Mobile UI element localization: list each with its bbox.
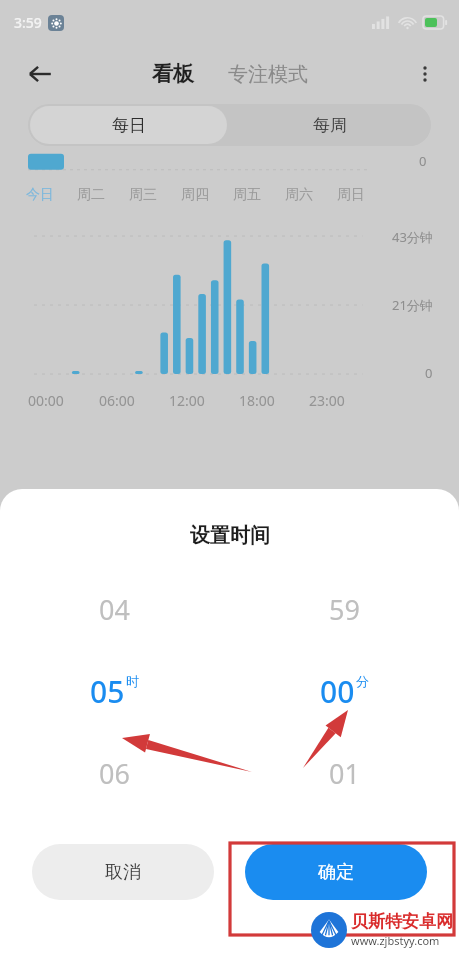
staticText: 周五 bbox=[233, 186, 261, 204]
staticText: 分 bbox=[356, 673, 369, 689]
staticText: 确定 bbox=[318, 861, 354, 884]
button[interactable]: 专注模式 bbox=[224, 62, 312, 87]
button[interactable]: 04 bbox=[0, 577, 229, 641]
staticText: 05 bbox=[90, 671, 125, 712]
button[interactable]: 06 bbox=[0, 741, 229, 805]
staticText: 43分钟 bbox=[392, 228, 433, 246]
staticText: 18:00 bbox=[239, 391, 275, 410]
button[interactable]: 周二 bbox=[77, 182, 129, 208]
staticText: 04 bbox=[99, 591, 130, 628]
button[interactable]: 每周 bbox=[229, 104, 431, 146]
button[interactable]: 01 bbox=[229, 741, 459, 805]
staticText: 06 bbox=[99, 755, 130, 792]
button[interactable]: 确定 bbox=[245, 844, 427, 900]
staticText: 3:59 bbox=[14, 13, 42, 32]
staticText: 周三 bbox=[129, 186, 157, 204]
staticText: 21分钟 bbox=[392, 296, 433, 314]
staticText: 看板 bbox=[152, 61, 194, 87]
staticText: 0 bbox=[419, 152, 427, 170]
staticText: 时 bbox=[126, 673, 139, 689]
button[interactable]: 取消 bbox=[32, 844, 214, 900]
staticText: 取消 bbox=[105, 861, 141, 884]
staticText: 00 bbox=[320, 671, 355, 712]
staticText: 周二 bbox=[77, 186, 105, 204]
button[interactable]: 05 bbox=[0, 659, 229, 723]
button[interactable]: 周五 bbox=[233, 182, 285, 208]
staticText: 0 bbox=[425, 364, 433, 382]
staticText: 周六 bbox=[285, 186, 313, 204]
button[interactable]: 今日 bbox=[26, 182, 77, 208]
button[interactable]: 周六 bbox=[285, 182, 337, 208]
staticText: 周四 bbox=[181, 186, 209, 204]
button[interactable]: 周四 bbox=[181, 182, 233, 208]
button[interactable]: 00 bbox=[229, 659, 459, 723]
button[interactable]: More options bbox=[403, 52, 447, 96]
staticText: 每日 bbox=[112, 115, 146, 136]
button[interactable]: 每日 bbox=[30, 106, 227, 144]
button[interactable]: 周三 bbox=[129, 182, 181, 208]
staticText: www.zjbstyy.com bbox=[351, 933, 440, 948]
button[interactable]: 59 bbox=[229, 577, 459, 641]
button[interactable]: 周日 bbox=[337, 182, 389, 208]
staticText: 06:00 bbox=[99, 391, 135, 410]
staticText: 23:00 bbox=[309, 391, 345, 410]
staticText: 01 bbox=[329, 755, 360, 792]
staticText: 设置时间 bbox=[190, 523, 270, 548]
staticText: 每周 bbox=[313, 115, 347, 136]
staticText: 12:00 bbox=[169, 391, 205, 410]
button[interactable]: 看板 bbox=[148, 61, 198, 87]
button[interactable]: Back bbox=[18, 52, 62, 96]
staticText: 00:00 bbox=[28, 391, 64, 410]
staticText: 贝斯特安卓网 bbox=[351, 911, 453, 932]
staticText: 周日 bbox=[337, 186, 365, 204]
staticText: 59 bbox=[329, 591, 360, 628]
staticText: 专注模式 bbox=[228, 62, 308, 87]
staticText: 今日 bbox=[26, 186, 54, 204]
